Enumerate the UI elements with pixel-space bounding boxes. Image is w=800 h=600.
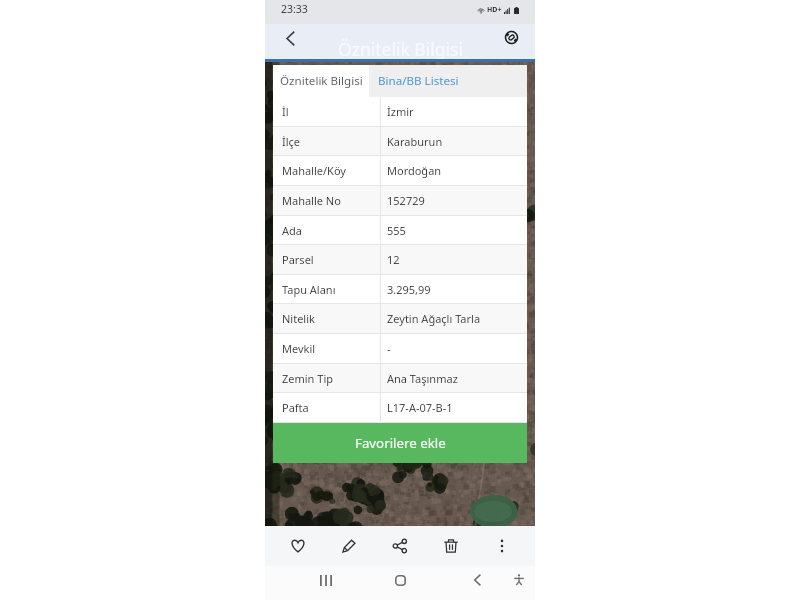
button[interactable]: Recent apps [314, 568, 338, 592]
button[interactable]: More options [484, 528, 520, 564]
button[interactable]: Home [388, 568, 412, 592]
staticText: İzmir [387, 104, 414, 119]
staticText: Mordoğan [387, 163, 442, 178]
button[interactable]: Ada [273, 216, 527, 244]
button[interactable]: Nitelik [273, 304, 527, 333]
staticText: Nitelik [282, 311, 315, 326]
button[interactable]: Edit [331, 528, 367, 564]
button[interactable]: Back [465, 568, 489, 592]
staticText: Pafta [282, 400, 309, 415]
staticText: 12 [387, 252, 400, 267]
staticText: 152729 [387, 193, 425, 208]
button[interactable]: Mahalle No [273, 186, 527, 215]
button[interactable]: Zemin Tip [273, 364, 527, 392]
button[interactable]: Accessibility [507, 568, 531, 592]
staticText: Zemin Tip [282, 371, 333, 386]
staticText: Mahalle No [282, 193, 341, 208]
button[interactable]: Tapu Alanı [273, 275, 527, 303]
button[interactable]: Favorite [280, 528, 316, 564]
staticText: Bina/BB Listesi [378, 73, 459, 89]
staticText: Mevkil [282, 341, 316, 356]
button[interactable]: Parsel [273, 245, 527, 274]
staticText: Tapu Alanı [282, 282, 336, 297]
staticText: L17-A-07-B-1 [387, 400, 453, 415]
staticText: Favorilere ekle [355, 434, 446, 452]
staticText: - [387, 341, 391, 356]
staticText: Zeytin Ağaçlı Tarla [387, 311, 481, 326]
staticText: Öznitelik Bilgisi [280, 73, 363, 89]
staticText: 3.295,99 [387, 282, 431, 297]
button[interactable]: Delete [433, 528, 469, 564]
staticText: Parsel [282, 252, 314, 267]
staticText: HD+ [487, 5, 502, 15]
staticText: Ada [282, 223, 302, 238]
button[interactable]: Mevkil [273, 334, 527, 363]
button[interactable]: Share [382, 528, 418, 564]
staticText: Karaburun [387, 134, 443, 149]
button[interactable]: Back [277, 25, 303, 51]
button[interactable]: Öznitelik Bilgisi [273, 65, 369, 97]
button[interactable]: Mahalle/Köy [273, 156, 527, 185]
staticText: 23:33 [281, 2, 308, 16]
staticText: İl [282, 104, 289, 119]
staticText: Öznitelik Bilgisi [338, 37, 463, 61]
staticText: 555 [387, 223, 406, 238]
button[interactable]: Bina/BB Listesi [369, 65, 527, 97]
button[interactable]: Pafta [273, 393, 527, 422]
button[interactable]: Refresh [498, 24, 524, 50]
button[interactable]: İlçe [273, 127, 527, 155]
button[interactable]: İl [273, 97, 527, 126]
button[interactable]: Favorilere ekle [273, 423, 527, 463]
staticText: İlçe [282, 134, 301, 149]
staticText: Mahalle/Köy [282, 163, 346, 178]
staticText: Ana Taşınmaz [387, 371, 458, 386]
